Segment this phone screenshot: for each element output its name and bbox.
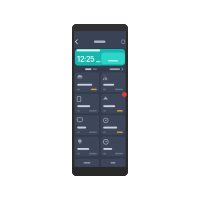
button[interactable] xyxy=(101,72,125,92)
staticText: 12:25 xyxy=(77,55,95,63)
button[interactable] xyxy=(75,159,99,167)
button[interactable] xyxy=(109,68,123,71)
button[interactable] xyxy=(101,53,125,64)
button[interactable] xyxy=(85,68,97,70)
button[interactable] xyxy=(75,94,99,113)
button[interactable] xyxy=(75,72,99,92)
button[interactable] xyxy=(75,137,99,156)
button[interactable] xyxy=(101,115,125,135)
button[interactable]: Back xyxy=(75,39,78,44)
button[interactable] xyxy=(75,115,99,135)
button[interactable]: Menu xyxy=(122,40,125,43)
button[interactable] xyxy=(101,159,125,167)
button[interactable] xyxy=(101,94,125,113)
button[interactable] xyxy=(101,137,125,156)
